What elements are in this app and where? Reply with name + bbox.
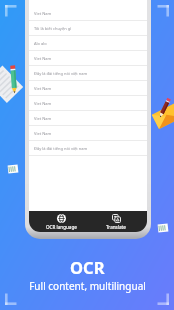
- staticText: Translate: [106, 224, 126, 230]
- staticText: OCR: [70, 256, 105, 278]
- staticText: Alo alo: [34, 41, 47, 46]
- staticText: Viet Nam: [34, 11, 52, 16]
- staticText: Đây là đài tiếng nói việt nam: [34, 146, 88, 151]
- staticText: Viet Nam: [34, 86, 52, 91]
- button[interactable]: OCR language: [41, 211, 81, 232]
- staticText: Tôi là biết chuyện gì: [34, 26, 72, 31]
- staticText: Viet Nam: [34, 131, 52, 136]
- staticText: Đây là đài tiếng nói việt nam: [34, 71, 88, 76]
- staticText: OCR language: [46, 224, 77, 230]
- staticText: Viet Nam: [34, 101, 52, 106]
- staticText: Viet Nam: [34, 56, 52, 61]
- staticText: Full content, multilingual: [29, 279, 146, 293]
- staticText: Viet Nam: [34, 116, 52, 121]
- button[interactable]: Translate: [96, 211, 136, 232]
